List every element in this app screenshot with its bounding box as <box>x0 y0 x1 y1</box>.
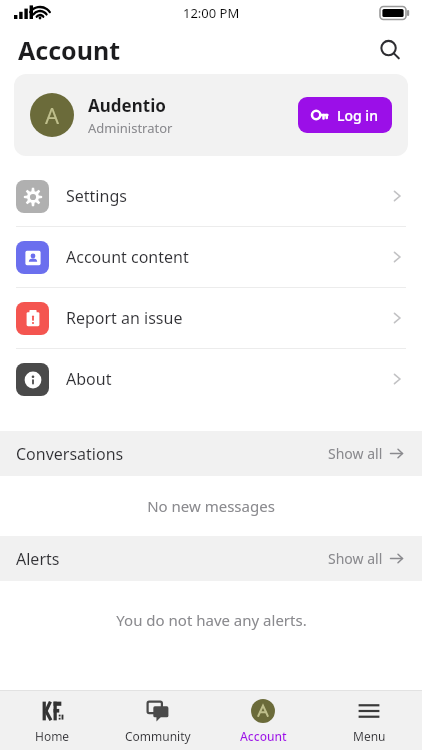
staticText: Log in <box>337 106 378 125</box>
button[interactable]: Account content <box>0 227 422 287</box>
button[interactable]: Show all <box>326 440 406 467</box>
button[interactable]: Community <box>105 698 210 744</box>
staticText: Report an issue <box>66 307 183 329</box>
staticText: Show all <box>328 444 383 463</box>
button[interactable]: Home <box>0 698 105 744</box>
staticText: Settings <box>66 185 127 207</box>
staticText: Menu <box>353 728 386 744</box>
staticText: Community <box>125 728 191 744</box>
button[interactable]: Show all <box>326 545 406 572</box>
staticText: 12:00 PM <box>183 4 240 22</box>
staticText: Account content <box>66 246 189 268</box>
button[interactable]: Account <box>210 698 316 744</box>
staticText: A <box>45 100 60 130</box>
button[interactable]: Report an issue <box>0 288 422 348</box>
button[interactable]: Search <box>370 30 410 70</box>
staticText: Administrator <box>88 119 173 137</box>
staticText: No new messages <box>147 496 275 516</box>
button[interactable]: A <box>14 74 408 156</box>
staticText: Alerts <box>16 548 60 570</box>
staticText: Account <box>18 33 121 67</box>
staticText: Show all <box>328 549 383 568</box>
staticText: Home <box>35 728 70 744</box>
staticText: Account <box>240 728 287 744</box>
staticText: You do not have any alerts. <box>116 610 307 630</box>
staticText: Audentio <box>88 94 166 117</box>
staticText: About <box>66 368 112 390</box>
button[interactable]: Log in <box>298 97 392 133</box>
staticText: Conversations <box>16 443 124 465</box>
button[interactable]: Settings <box>0 166 422 226</box>
button[interactable]: About <box>0 349 422 409</box>
button[interactable]: Menu <box>316 698 422 744</box>
